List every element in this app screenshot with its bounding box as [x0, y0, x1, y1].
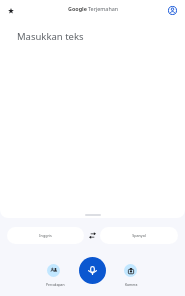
button[interactable]: Swap languages [84, 227, 100, 244]
staticText: Percakapan [46, 282, 65, 287]
button[interactable] [118, 262, 143, 286]
button[interactable]: Account [167, 5, 178, 16]
staticText: Terjemahan [88, 5, 119, 12]
button[interactable] [41, 262, 66, 286]
button[interactable]: Saved [5, 5, 16, 16]
button[interactable]: Speak [79, 257, 106, 284]
button[interactable]: Inggris [7, 227, 84, 244]
staticText: Masukkan teks [17, 30, 84, 43]
staticText: Inggris [39, 233, 52, 238]
button[interactable]: Spanyol [100, 227, 178, 244]
staticText: Google [68, 5, 87, 12]
staticText: Kamera [125, 282, 138, 287]
staticText: Spanyol [132, 233, 146, 238]
